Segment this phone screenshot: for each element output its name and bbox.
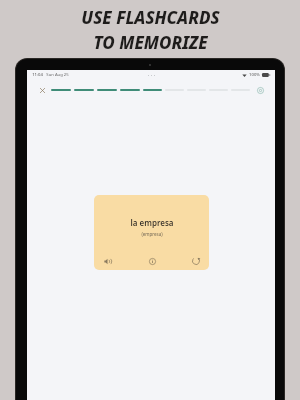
staticText: 100% — [249, 72, 260, 78]
staticText: USE FLASHCARDS — [81, 6, 220, 29]
staticText: 11:04 — [32, 72, 43, 78]
staticText: la empresa — [130, 217, 174, 228]
staticText: Sun Aug 25 — [46, 72, 69, 78]
button[interactable]: Flip card — [190, 255, 202, 267]
button[interactable]: Play audio — [101, 255, 113, 267]
staticText: (empresa) — [141, 231, 163, 237]
button[interactable]: Close — [37, 85, 47, 95]
button[interactable]: la empresa — [94, 195, 209, 270]
staticText: TO MEMORIZE — [93, 31, 208, 54]
button[interactable]: Info — [146, 255, 158, 267]
button[interactable]: Settings — [255, 85, 265, 95]
